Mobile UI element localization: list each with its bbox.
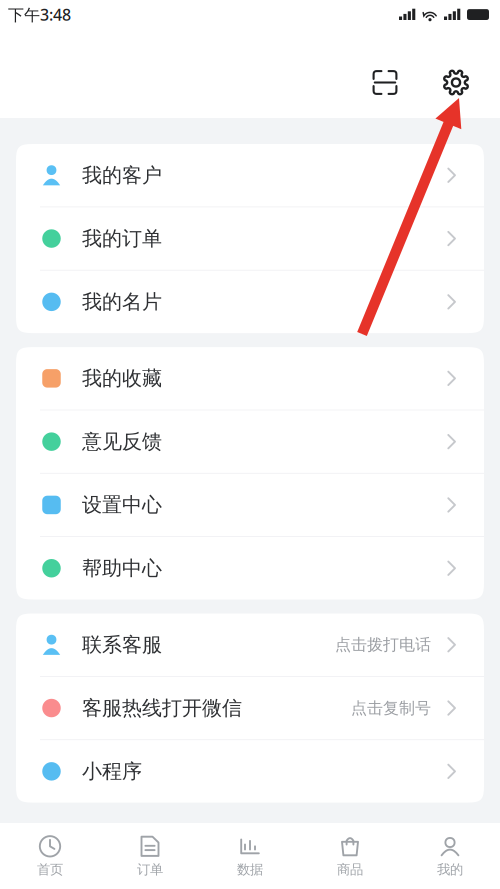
- staticText: 我的订单: [82, 226, 162, 251]
- button[interactable]: 我的客户: [16, 144, 484, 207]
- button[interactable]: 设置中心: [16, 474, 484, 537]
- staticText: 设置中心: [82, 493, 162, 517]
- staticText: 意见反馈: [82, 429, 162, 454]
- staticText: 订单: [137, 861, 163, 878]
- button[interactable]: 我的名片: [16, 271, 484, 333]
- button[interactable]: Scan QR code: [372, 69, 398, 95]
- button[interactable]: 首页: [0, 823, 100, 889]
- staticText: 我的收藏: [82, 366, 162, 391]
- staticText: 联系客服: [82, 632, 162, 657]
- staticText: 我的: [437, 861, 463, 878]
- staticText: 数据: [237, 861, 263, 878]
- button[interactable]: 我的收藏: [16, 347, 484, 410]
- button[interactable]: 我的: [400, 823, 500, 889]
- button[interactable]: 帮助中心: [16, 537, 484, 599]
- button[interactable]: 客服热线打开微信: [16, 677, 484, 740]
- staticText: 下午3:48: [8, 4, 71, 25]
- staticText: 帮助中心: [82, 556, 162, 581]
- button[interactable]: 联系客服: [16, 613, 484, 677]
- button[interactable]: 我的订单: [16, 207, 484, 271]
- staticText: 客服热线打开微信: [82, 696, 242, 720]
- staticText: 点击拨打电话: [335, 635, 431, 655]
- staticText: 首页: [37, 861, 63, 878]
- staticText: 点击复制号: [351, 698, 431, 718]
- button[interactable]: Settings: [442, 68, 470, 96]
- staticText: 小程序: [82, 759, 142, 784]
- button[interactable]: 商品: [300, 823, 400, 889]
- button[interactable]: 意见反馈: [16, 410, 484, 474]
- staticText: 商品: [337, 861, 363, 878]
- staticText: 我的名片: [82, 290, 162, 314]
- button[interactable]: 小程序: [16, 740, 484, 803]
- staticText: 我的客户: [82, 163, 162, 188]
- button[interactable]: 订单: [100, 823, 200, 889]
- button[interactable]: 数据: [200, 823, 300, 889]
